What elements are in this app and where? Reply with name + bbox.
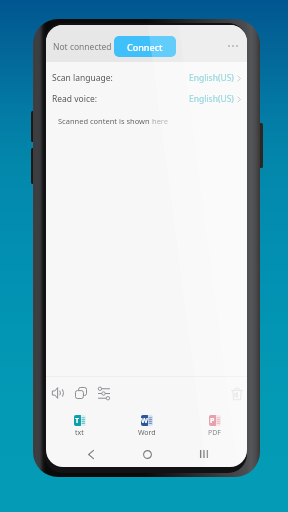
button[interactable]: More options xyxy=(224,42,242,50)
button[interactable]: W xyxy=(113,411,180,438)
staticText: Connect xyxy=(127,41,163,53)
staticText: English(US) xyxy=(189,93,234,105)
button[interactable]: P xyxy=(181,411,247,438)
button[interactable]: Back xyxy=(82,445,100,463)
staticText: Scanned content is shown xyxy=(58,116,152,126)
staticText: Word xyxy=(138,428,156,438)
button[interactable]: Scan language: xyxy=(46,67,247,89)
button[interactable]: Connect xyxy=(114,36,176,57)
staticText: W xyxy=(141,416,148,426)
button[interactable]: Home xyxy=(138,445,156,463)
button[interactable]: Delete xyxy=(225,382,247,406)
staticText: T xyxy=(75,416,80,426)
button[interactable]: Recent apps xyxy=(195,445,213,463)
staticText: English(US) xyxy=(189,72,234,84)
staticText: here xyxy=(152,116,169,126)
button[interactable]: Settings xyxy=(92,381,116,405)
staticText: Scan language: xyxy=(52,72,113,84)
staticText: txt xyxy=(75,428,84,438)
staticText: Not connected xyxy=(53,41,112,53)
button[interactable]: Copy xyxy=(69,381,93,405)
button[interactable]: Read aloud xyxy=(46,381,70,405)
staticText: Read voice: xyxy=(52,93,98,105)
button[interactable]: Read voice: xyxy=(46,88,247,110)
staticText: PDF xyxy=(208,428,221,438)
button[interactable]: T xyxy=(46,411,113,438)
staticText: P xyxy=(210,416,215,426)
